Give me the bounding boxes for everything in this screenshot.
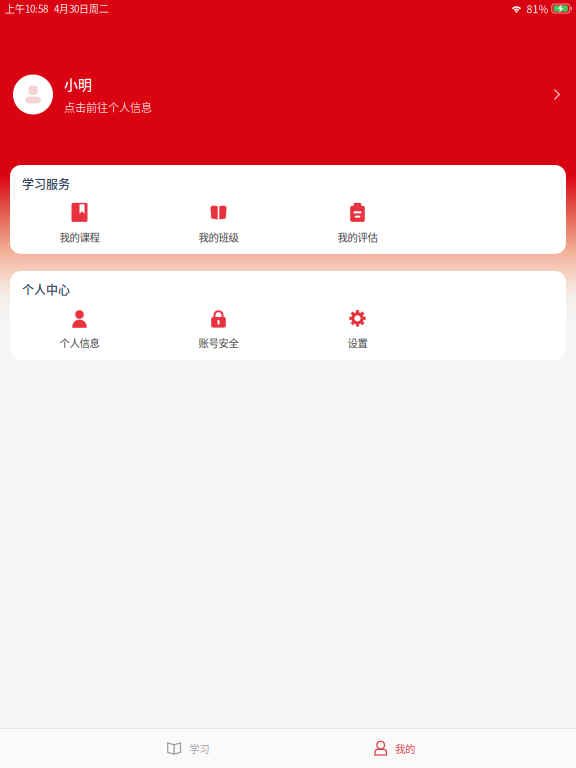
button[interactable]: 我的课程 bbox=[10, 203, 149, 244]
staticText: 我的 bbox=[395, 741, 415, 756]
button[interactable]: 账号安全 bbox=[149, 309, 288, 350]
staticText: 点击前往个人信息 bbox=[64, 99, 152, 115]
button[interactable]: 我的 bbox=[374, 729, 415, 767]
staticText: 81% bbox=[527, 1, 549, 16]
button[interactable]: 我的评估 bbox=[288, 203, 427, 244]
button[interactable]: 小明 bbox=[0, 24, 576, 165]
staticText: 我的课程 bbox=[59, 229, 99, 244]
staticText: 我的班级 bbox=[198, 229, 238, 244]
button[interactable]: 设置 bbox=[288, 309, 427, 350]
button[interactable]: 我的班级 bbox=[149, 203, 288, 244]
staticText: 小明 bbox=[64, 74, 92, 94]
button[interactable]: 个人信息 bbox=[10, 309, 149, 350]
staticText: 学习 bbox=[189, 741, 209, 756]
staticText: 个人中心 bbox=[22, 281, 70, 298]
staticText: 个人信息 bbox=[59, 335, 99, 350]
staticText: 账号安全 bbox=[198, 335, 238, 350]
staticText: 设置 bbox=[347, 335, 367, 350]
staticText: 我的评估 bbox=[337, 229, 377, 244]
button[interactable]: 学习 bbox=[167, 729, 209, 767]
staticText: 上午10:58 4月30日周二 bbox=[5, 1, 109, 16]
staticText: 学习服务 bbox=[22, 175, 70, 192]
